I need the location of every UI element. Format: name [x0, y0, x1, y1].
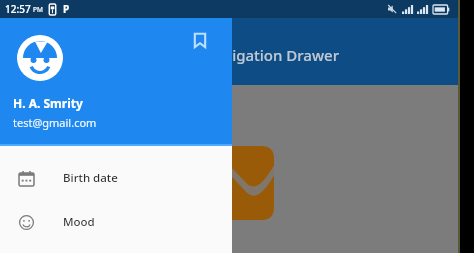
staticText: Birth date: [63, 170, 118, 186]
button[interactable]: Mood: [0, 200, 232, 244]
staticText: Navigation Drawer: [204, 45, 339, 65]
button[interactable]: Birth date: [0, 156, 232, 200]
button[interactable]: Bookmark: [0, 18, 232, 144]
staticText: P: [63, 2, 70, 16]
staticText: 12:57: [5, 2, 31, 16]
staticText: H. A. Smrity: [13, 95, 83, 111]
staticText: Mood: [63, 214, 95, 230]
button[interactable]: Bookmark: [188, 28, 212, 52]
staticText: PM: [33, 5, 43, 14]
staticText: test@gmail.com: [13, 115, 97, 130]
